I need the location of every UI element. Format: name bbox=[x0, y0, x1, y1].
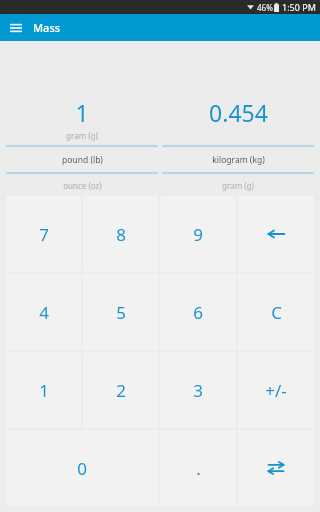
button[interactable]: 9 bbox=[160, 196, 236, 272]
button[interactable]: . bbox=[160, 430, 236, 506]
button[interactable]: 3 bbox=[160, 352, 236, 428]
staticText: 5 bbox=[116, 301, 126, 324]
button[interactable]: 7 bbox=[6, 196, 81, 272]
button[interactable]: 4 bbox=[6, 274, 81, 350]
staticText: 6 bbox=[193, 301, 203, 324]
button[interactable]: 6 bbox=[160, 274, 236, 350]
staticText: 2 bbox=[116, 379, 126, 402]
button[interactable]: +/- bbox=[238, 352, 314, 428]
button[interactable]: Open navigation drawer bbox=[6, 18, 26, 38]
staticText: 1 bbox=[39, 379, 49, 402]
staticText: gram (g) bbox=[66, 130, 98, 141]
button[interactable]: 8 bbox=[83, 196, 158, 272]
staticText: 1 bbox=[75, 97, 89, 125]
button[interactable]: C bbox=[238, 274, 314, 350]
button[interactable]: 2 bbox=[83, 352, 158, 428]
button[interactable]: gram (g) bbox=[162, 174, 314, 196]
staticText: . bbox=[196, 457, 201, 480]
staticText: pound (lb) bbox=[62, 154, 103, 166]
staticText: 0 bbox=[77, 457, 87, 480]
staticText: +/- bbox=[265, 379, 287, 402]
staticText: 7 bbox=[39, 223, 49, 246]
staticText: kilogram (kg) bbox=[212, 154, 265, 166]
button[interactable]: 5 bbox=[83, 274, 158, 350]
staticText: 4 bbox=[39, 301, 49, 324]
button[interactable]: Swap units bbox=[238, 430, 314, 506]
staticText: 8 bbox=[116, 223, 126, 246]
staticText: C bbox=[271, 301, 282, 324]
button[interactable]: Backspace bbox=[238, 196, 314, 272]
button[interactable]: 0 bbox=[6, 430, 158, 506]
button[interactable]: kilogram (kg) bbox=[162, 147, 314, 173]
button[interactable]: ounce (oz) bbox=[6, 174, 158, 196]
staticText: ounce (oz) bbox=[63, 180, 102, 191]
staticText: 3 bbox=[193, 379, 203, 402]
staticText: gram (g) bbox=[222, 180, 254, 191]
button[interactable]: gram (g) bbox=[6, 125, 158, 146]
button[interactable]: 1 bbox=[6, 352, 81, 428]
staticText: 46% bbox=[257, 2, 273, 13]
staticText: 9 bbox=[193, 223, 203, 246]
staticText: 0.454 bbox=[209, 97, 268, 125]
staticText: 1:50 PM bbox=[282, 1, 316, 13]
button[interactable] bbox=[162, 125, 314, 146]
staticText: Mass bbox=[33, 20, 61, 35]
button[interactable]: pound (lb) bbox=[6, 147, 158, 173]
